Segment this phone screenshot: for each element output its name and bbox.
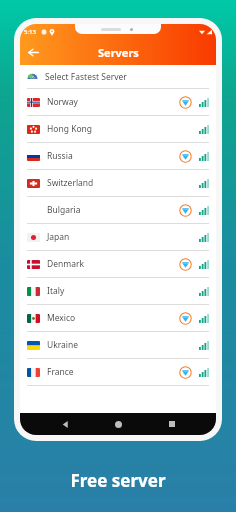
button[interactable]: Recents: [163, 415, 181, 433]
button[interactable]: Denmark: [20, 251, 216, 277]
button[interactable]: Back: [56, 415, 74, 433]
button[interactable]: Ukraine: [20, 332, 216, 358]
staticText: Select Fastest Server: [45, 71, 127, 83]
staticText: Bulgaria: [47, 204, 81, 216]
staticText: Denmark: [47, 258, 85, 270]
button[interactable]: Hong Kong: [20, 116, 216, 142]
button[interactable]: Back: [22, 41, 44, 63]
staticText: Free server: [0, 469, 236, 492]
other: VIP server: [179, 366, 192, 379]
button[interactable]: Home: [109, 415, 127, 433]
button[interactable]: Select Fastest Server: [20, 65, 216, 88]
staticText: Hong Kong: [47, 123, 93, 135]
staticText: Switzerland: [47, 177, 94, 189]
other: VIP server: [179, 258, 192, 271]
button[interactable]: Switzerland: [20, 170, 216, 196]
staticText: 5:13: [24, 28, 36, 36]
button[interactable]: Bulgaria: [20, 197, 216, 223]
staticText: Ukraine: [47, 339, 79, 351]
staticText: France: [47, 366, 74, 378]
button[interactable]: France: [20, 359, 216, 385]
other: VIP server: [179, 312, 192, 325]
staticText: Norway: [47, 96, 78, 108]
button[interactable]: Japan: [20, 224, 216, 250]
staticText: Mexico: [47, 312, 76, 324]
other: VIP server: [179, 204, 192, 217]
other: VIP server: [179, 150, 192, 163]
button[interactable]: Russia: [20, 143, 216, 169]
staticText: Servers: [98, 45, 139, 60]
button[interactable]: Norway: [20, 89, 216, 115]
staticText: Italy: [47, 285, 65, 297]
staticText: Japan: [47, 231, 70, 243]
other: VIP server: [179, 96, 192, 109]
button[interactable]: Italy: [20, 278, 216, 304]
staticText: Russia: [47, 150, 73, 162]
button[interactable]: Mexico: [20, 305, 216, 331]
